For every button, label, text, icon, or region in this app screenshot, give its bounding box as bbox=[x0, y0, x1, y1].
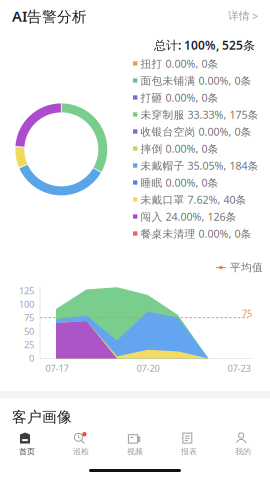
staticText: 面包未铺满 0.00%, 0条 bbox=[140, 73, 251, 88]
staticText: 07-17 bbox=[45, 362, 68, 374]
staticText: 平均值 bbox=[230, 261, 263, 274]
staticText: 我的 bbox=[235, 447, 251, 456]
staticText: 详情 bbox=[228, 9, 250, 22]
staticText: 75 bbox=[242, 307, 252, 319]
staticText: 视频 bbox=[127, 447, 143, 456]
staticText: 餐桌未清理 0.00%, 0条 bbox=[140, 226, 251, 241]
staticText: 报表 bbox=[181, 447, 197, 456]
staticText: 睡眠 0.00%, 0条 bbox=[140, 175, 218, 190]
staticText: 未穿制服 33.33%, 175条 bbox=[140, 107, 258, 122]
staticText: 巡检 bbox=[73, 447, 89, 456]
staticText: 07-20 bbox=[136, 362, 159, 374]
staticText: 总计: 100%, 525条 bbox=[154, 37, 255, 53]
button[interactable]: 我的 bbox=[216, 432, 270, 456]
staticText: 摔倒 0.00%, 0条 bbox=[140, 141, 218, 156]
staticText: AI告警分析 bbox=[12, 6, 87, 26]
staticText: 未戴帽子 35.05%, 184条 bbox=[140, 158, 258, 173]
button[interactable]: 巡检 bbox=[54, 432, 108, 456]
button[interactable]: 首页 bbox=[0, 432, 54, 456]
button[interactable]: 视频 bbox=[108, 432, 162, 456]
staticText: 闯入 24.00%, 126条 bbox=[140, 209, 236, 224]
staticText: > bbox=[252, 9, 258, 23]
staticText: 客户画像 bbox=[12, 408, 72, 426]
staticText: 75 bbox=[24, 311, 34, 324]
staticText: 25 bbox=[24, 338, 34, 351]
staticText: 打砸 0.00%, 0条 bbox=[140, 90, 218, 105]
staticText: 100 bbox=[19, 298, 34, 310]
staticText: 首页 bbox=[19, 447, 35, 456]
staticText: 未戴口罩 7.62%, 40条 bbox=[140, 192, 246, 207]
staticText: 收银台空岗 0.00%, 0条 bbox=[140, 124, 251, 139]
staticText: 50 bbox=[24, 325, 34, 337]
staticText: 125 bbox=[19, 284, 34, 297]
staticText: 0 bbox=[29, 352, 34, 364]
button[interactable]: 报表 bbox=[162, 432, 216, 456]
staticText: 07-23 bbox=[227, 362, 250, 374]
button[interactable]: 详情 bbox=[228, 9, 258, 23]
staticText: 扭打 0.00%, 0条 bbox=[140, 56, 218, 71]
